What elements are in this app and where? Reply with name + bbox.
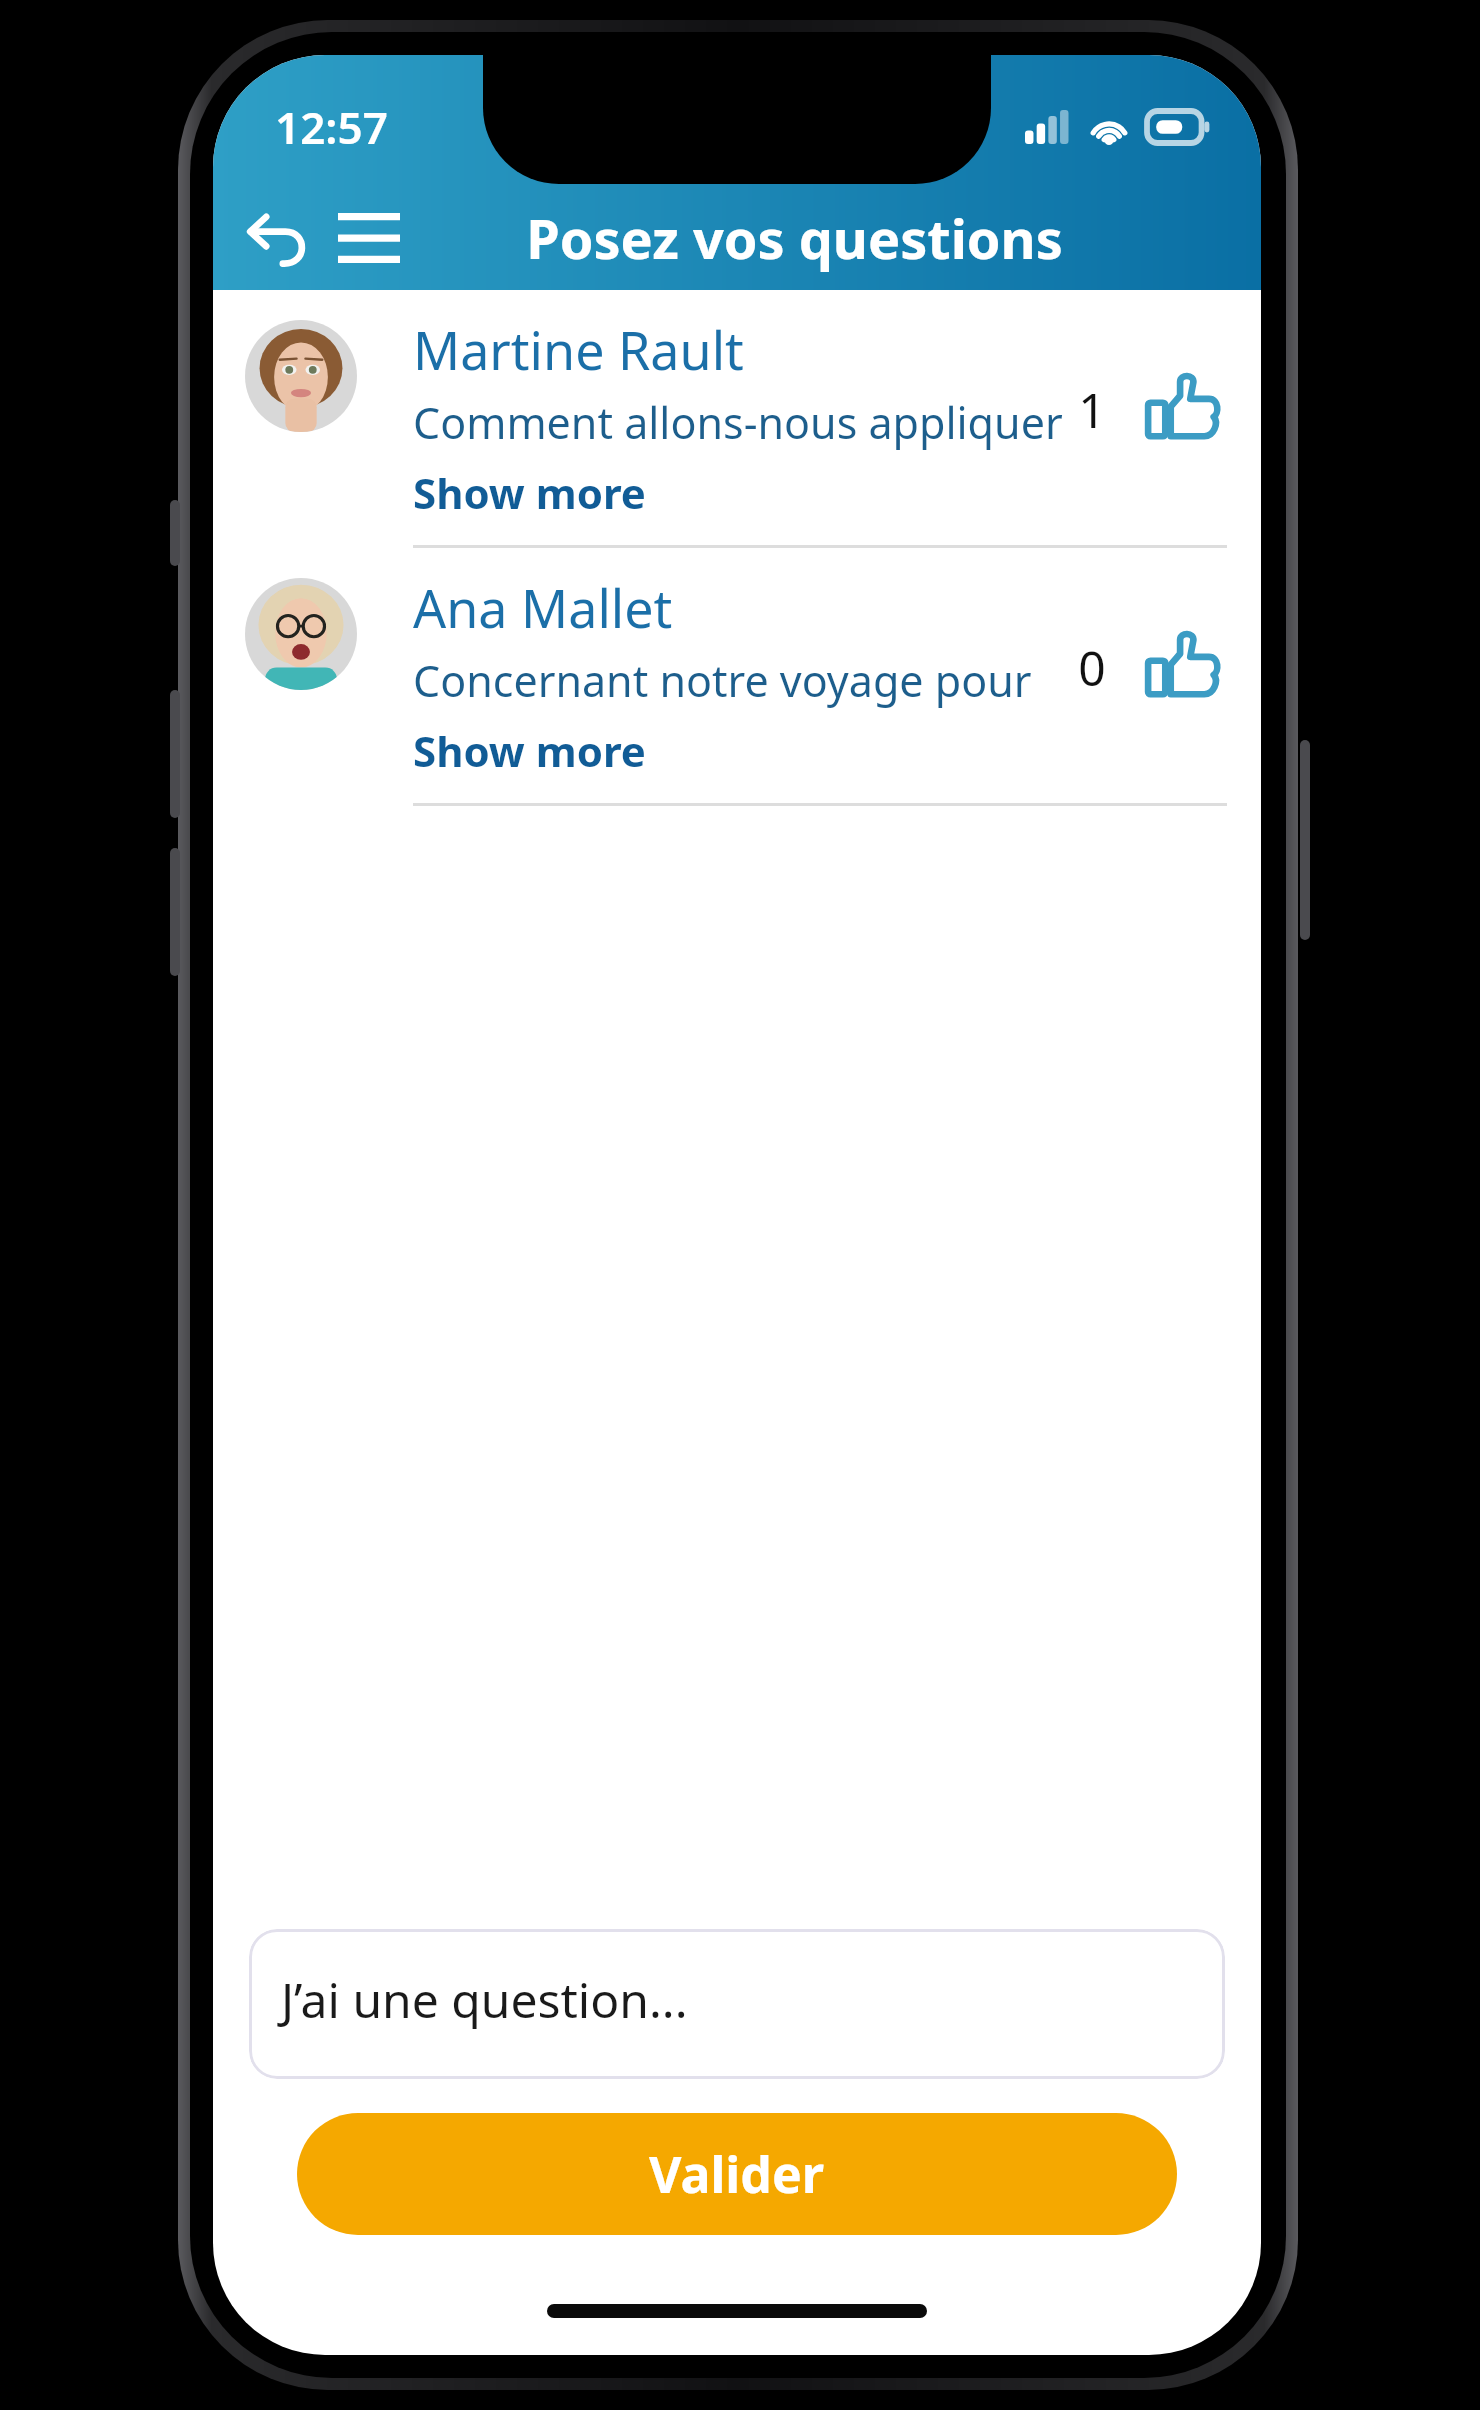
staticText: Comment allons-nous appliquer notre [413,393,1069,452]
button[interactable]: Martine Rault [213,304,1261,562]
staticText: 12:57 [275,97,388,157]
button[interactable]: J’ai une question... [249,1929,1225,2079]
button[interactable]: Back [237,196,321,280]
staticText: J’ai une question... [281,1967,688,2032]
staticText: Posez vos questions [526,201,1063,275]
button[interactable]: Show more [413,464,646,521]
staticText: Ana Mallet [413,572,673,643]
button[interactable]: Menu [327,196,411,280]
staticText: 1 [1069,377,1115,442]
button[interactable]: Ana Mallet [213,562,1261,820]
button[interactable]: Valider [297,2113,1177,2235]
staticText: 0 [1069,635,1115,700]
staticText: Show more [413,722,646,779]
button[interactable]: Show more [413,722,646,779]
staticText: Show more [413,464,646,521]
button[interactable]: Like [1141,366,1227,452]
staticText: Concernant notre voyage pour San Fr [413,651,1069,710]
staticText: Valider [649,2140,825,2208]
staticText: Martine Rault [413,314,744,385]
button[interactable]: Like [1141,624,1227,710]
